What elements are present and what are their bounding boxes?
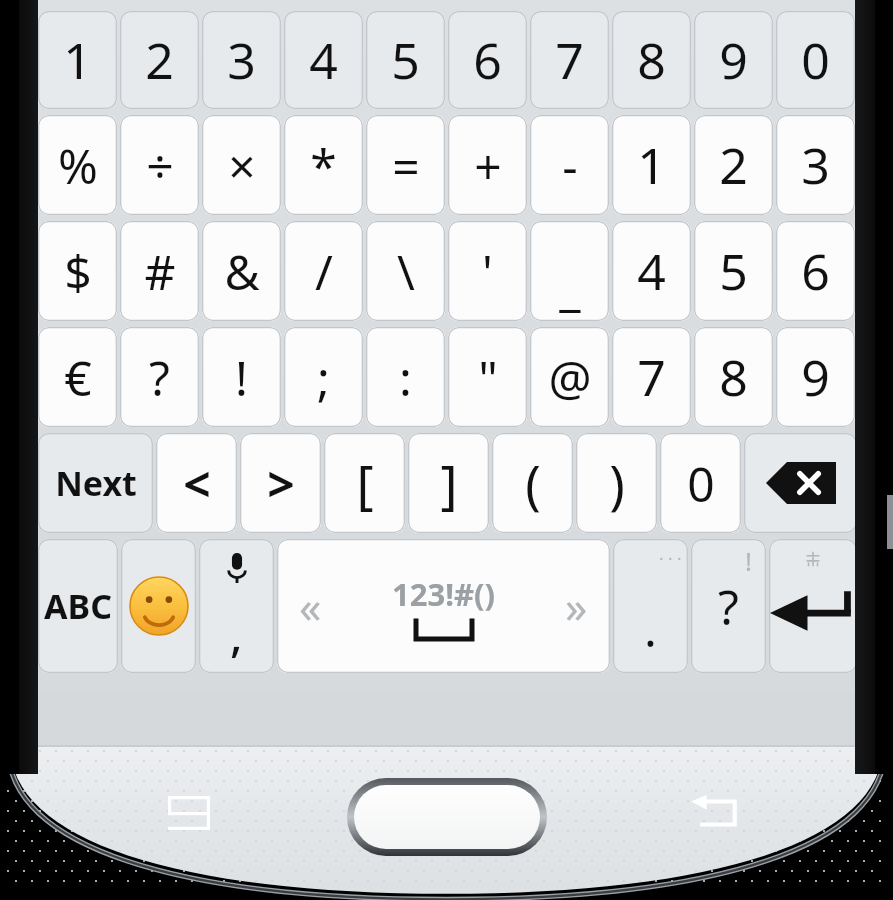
button[interactable]: 7	[530, 11, 609, 109]
staticText: $	[64, 239, 92, 304]
button[interactable]: !	[691, 539, 766, 673]
staticText: 4	[309, 26, 338, 94]
button[interactable]: 5	[694, 221, 773, 321]
staticText: =	[392, 133, 420, 198]
staticText: ;	[317, 345, 330, 410]
button[interactable]: 6	[448, 11, 527, 109]
staticText: Next	[55, 460, 137, 506]
staticText: 7	[637, 343, 666, 411]
button[interactable]: · · ·	[613, 539, 688, 673]
staticText: ?	[718, 574, 739, 639]
button[interactable]: 3	[776, 115, 855, 215]
button[interactable]: ABC	[38, 539, 118, 673]
staticText: ×	[228, 133, 256, 198]
staticText: 6	[801, 237, 830, 305]
button[interactable]: 7	[612, 327, 691, 427]
button[interactable]: 1	[38, 11, 117, 109]
button[interactable]: Recent apps	[160, 790, 218, 836]
staticText: 4	[637, 237, 666, 305]
staticText: «	[299, 576, 322, 636]
staticText: ABC	[44, 583, 112, 629]
button[interactable]: <	[156, 433, 237, 533]
button[interactable]: Back	[685, 790, 743, 836]
staticText: 5	[391, 26, 420, 94]
staticText: ]	[440, 448, 458, 519]
button[interactable]: ÷	[120, 115, 199, 215]
staticText: :	[399, 345, 412, 410]
staticText: #	[144, 239, 176, 304]
staticText: +	[474, 133, 502, 198]
button[interactable]: 4	[612, 221, 691, 321]
button[interactable]: -	[530, 115, 609, 215]
button[interactable]: ;	[284, 327, 363, 427]
button[interactable]: 2	[694, 115, 773, 215]
staticText: · · ·	[659, 547, 682, 570]
button[interactable]: 8	[612, 11, 691, 109]
button[interactable]: ]	[408, 433, 489, 533]
staticText: €	[64, 345, 92, 410]
staticText: 3	[227, 26, 256, 94]
button[interactable]: 5	[366, 11, 445, 109]
button[interactable]: 6	[776, 221, 855, 321]
button[interactable]: 1	[612, 115, 691, 215]
button[interactable]: _	[530, 221, 609, 321]
button[interactable]: >	[240, 433, 321, 533]
button[interactable]: *	[284, 115, 363, 215]
staticText: 0	[687, 451, 715, 516]
button[interactable]: \	[366, 221, 445, 321]
staticText: 0	[801, 26, 830, 94]
staticText: '	[482, 239, 493, 304]
button[interactable]: )	[576, 433, 657, 533]
staticText: 1	[63, 26, 92, 94]
button[interactable]: ×	[202, 115, 281, 215]
button[interactable]: Home	[347, 778, 547, 856]
staticText: [	[356, 448, 374, 519]
button[interactable]: Voice input	[199, 539, 274, 673]
button[interactable]: %	[38, 115, 117, 215]
staticText: 8	[637, 26, 666, 94]
button[interactable]: Space	[277, 539, 610, 673]
staticText: 9	[801, 343, 830, 411]
button[interactable]: @	[530, 327, 609, 427]
staticText: )	[609, 448, 625, 519]
button[interactable]: "	[448, 327, 527, 427]
staticText: 3	[801, 131, 830, 199]
button[interactable]: 9	[776, 327, 855, 427]
button[interactable]: 0	[660, 433, 741, 533]
button[interactable]: =	[366, 115, 445, 215]
button[interactable]: (	[492, 433, 573, 533]
button[interactable]: $	[38, 221, 117, 321]
button[interactable]: Delete	[744, 433, 857, 533]
button[interactable]: 3	[202, 11, 281, 109]
button[interactable]: !	[202, 327, 281, 427]
button[interactable]: &	[202, 221, 281, 321]
button[interactable]: 4	[284, 11, 363, 109]
button[interactable]: Enter	[769, 539, 857, 673]
button[interactable]: 0	[776, 11, 855, 109]
button[interactable]: #	[120, 221, 199, 321]
button[interactable]: 8	[694, 327, 773, 427]
staticText: &	[224, 239, 260, 304]
staticText: \	[397, 239, 415, 304]
staticText: "	[478, 345, 498, 410]
staticText: 1	[637, 131, 666, 199]
button[interactable]: 2	[120, 11, 199, 109]
button[interactable]: '	[448, 221, 527, 321]
staticText: -	[562, 133, 578, 198]
staticText: 2	[719, 131, 748, 199]
staticText: 5	[719, 237, 748, 305]
staticText: 9	[719, 26, 748, 94]
staticText: ,	[230, 603, 243, 666]
button[interactable]: Emoji	[121, 539, 196, 673]
staticText: 6	[473, 26, 502, 94]
button[interactable]: Next	[38, 433, 153, 533]
staticText: >	[267, 451, 295, 516]
button[interactable]: 9	[694, 11, 773, 109]
staticText: ?	[149, 345, 170, 410]
button[interactable]: :	[366, 327, 445, 427]
button[interactable]: [	[324, 433, 405, 533]
button[interactable]: +	[448, 115, 527, 215]
button[interactable]: /	[284, 221, 363, 321]
button[interactable]: ?	[120, 327, 199, 427]
button[interactable]: €	[38, 327, 117, 427]
